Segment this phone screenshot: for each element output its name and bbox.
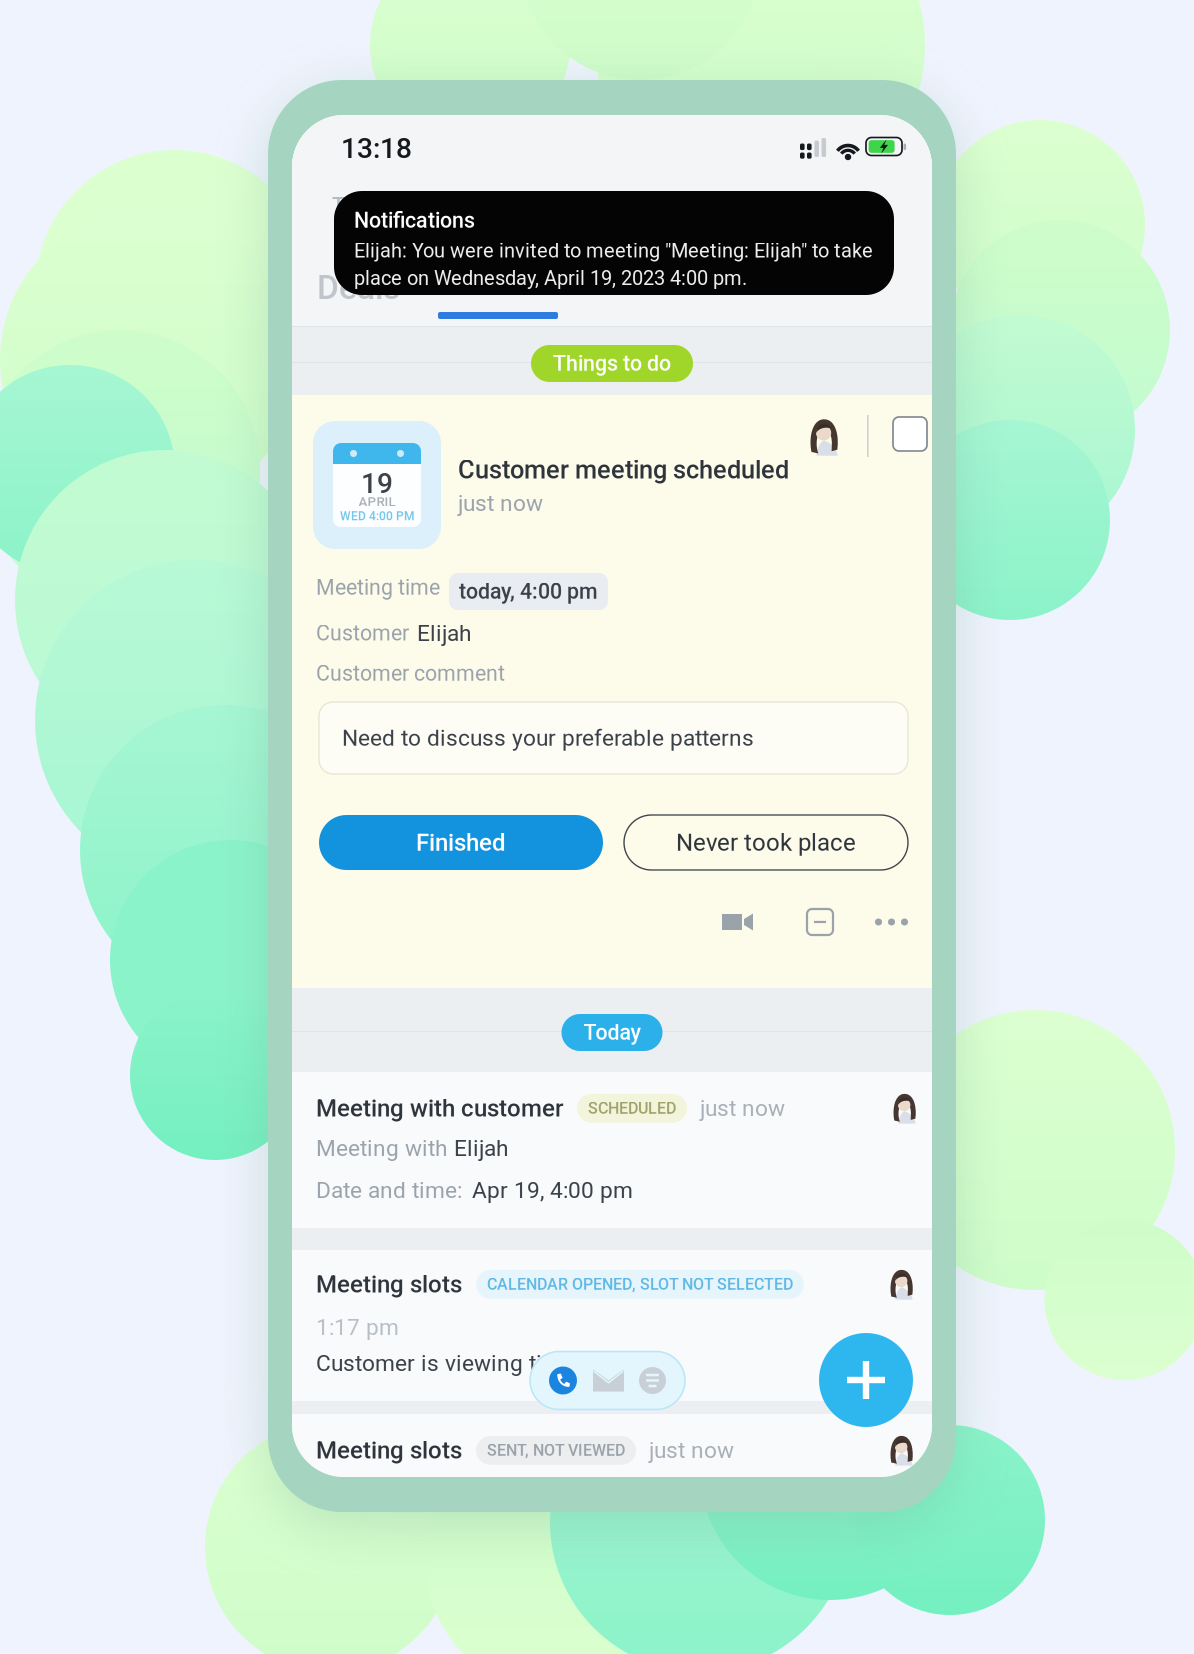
- button[interactable]: Mark complete: [893, 417, 927, 451]
- button[interactable]: Add note: [806, 908, 834, 936]
- staticText: Apr 19, 4:00 pm: [472, 1177, 633, 1204]
- button[interactable]: Never took place: [624, 815, 908, 870]
- button[interactable]: Finished: [319, 815, 603, 870]
- staticText: CALENDAR OPENED, SLOT NOT SELECTED: [487, 1275, 793, 1294]
- staticText: Things to do: [553, 351, 671, 376]
- staticText: Meeting slots: [316, 1270, 462, 1298]
- staticText: Meeting slots: [316, 1436, 462, 1464]
- staticText: Customer comment: [316, 661, 505, 686]
- button[interactable]: Email: [593, 1369, 624, 1391]
- button[interactable]: Meeting slots: [292, 1414, 932, 1477]
- staticText: APRIL: [358, 494, 395, 510]
- staticText: WED 4:00 PM: [340, 509, 414, 523]
- staticText: Customer meeting scheduled: [458, 455, 789, 485]
- staticText: place on Wednesday, April 19, 2023 4:00 …: [354, 266, 747, 290]
- staticText: Meeting with customer: [316, 1094, 563, 1122]
- staticText: Today: [583, 1020, 640, 1045]
- staticText: Customer is viewing time slots: [316, 1350, 630, 1377]
- staticText: Meeting time: [316, 575, 440, 600]
- staticText: today, 4:00 pm: [459, 579, 598, 604]
- button[interactable]: Today: [561, 1014, 662, 1051]
- staticText: Deals: [317, 268, 400, 307]
- staticText: Need to discuss your preferable patterns: [342, 725, 754, 751]
- staticText: Customer: [316, 621, 409, 646]
- button[interactable]: Video call: [721, 910, 754, 934]
- button[interactable]: Meeting with customer: [292, 1072, 932, 1228]
- staticText: just now: [700, 1095, 785, 1122]
- button[interactable]: Things to do: [531, 345, 693, 382]
- staticText: SCHEDULED: [588, 1099, 676, 1118]
- staticText: Date and time:: [316, 1177, 462, 1204]
- button[interactable]: Create new: [819, 1333, 913, 1427]
- staticText: just now: [458, 490, 543, 517]
- staticText: Finished: [416, 828, 506, 856]
- staticText: SENT, NOT VIEWED: [487, 1441, 625, 1460]
- button[interactable]: More options: [875, 910, 908, 934]
- staticText: 1:17 pm: [316, 1314, 399, 1341]
- button[interactable]: Message: [639, 1367, 666, 1394]
- staticText: Notifications: [354, 208, 475, 233]
- staticText: Elijah: [417, 620, 471, 647]
- staticText: 13:18: [341, 132, 412, 165]
- staticText: Meeting with: [316, 1135, 447, 1162]
- button[interactable]: Meeting slots: [292, 1250, 932, 1401]
- staticText: Elijah: You were invited to meeting "Mee…: [354, 239, 873, 262]
- staticText: Elijah: [454, 1135, 508, 1162]
- staticText: Never took place: [676, 828, 856, 856]
- button[interactable]: Call: [549, 1366, 577, 1394]
- staticText: 19: [361, 467, 393, 500]
- staticText: just now: [649, 1437, 734, 1464]
- staticText: Tasks: [332, 193, 389, 218]
